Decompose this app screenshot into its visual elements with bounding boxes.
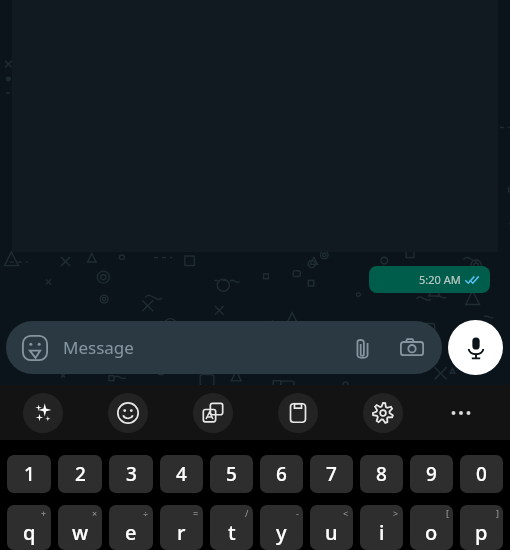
button[interactable]: 6: [260, 455, 303, 493]
staticText: <: [343, 507, 349, 519]
button[interactable]: 2: [58, 455, 102, 493]
staticText: e: [125, 519, 137, 546]
button[interactable]: Stickers: [6, 321, 442, 374]
button[interactable]: 1: [7, 455, 51, 493]
button[interactable]: 7: [310, 455, 353, 493]
button[interactable]: ×: [58, 505, 102, 550]
button[interactable]: 5: [210, 455, 253, 493]
button[interactable]: 3: [109, 455, 153, 493]
staticText: 3: [126, 461, 137, 487]
staticText: t: [228, 519, 236, 546]
button[interactable]: Attach: [344, 330, 380, 366]
button[interactable]: 8: [360, 455, 403, 493]
staticText: 5: [226, 461, 237, 487]
staticText: 6: [276, 461, 287, 487]
button[interactable]: 9: [410, 455, 453, 493]
button[interactable]: More options: [441, 393, 481, 433]
staticText: 5:20 AM: [419, 272, 461, 287]
button[interactable]: Stickers: [18, 331, 52, 365]
button[interactable]: ]: [460, 505, 503, 550]
staticText: ×: [92, 507, 98, 519]
staticText: ]: [496, 507, 499, 519]
staticText: [: [446, 507, 449, 519]
staticText: +: [41, 507, 47, 519]
staticText: 2: [75, 461, 86, 487]
staticText: -: [296, 507, 299, 519]
staticText: q: [23, 519, 36, 546]
staticText: u: [325, 519, 338, 546]
button[interactable]: Voice message: [448, 320, 503, 375]
button[interactable]: 5:20 AM: [369, 266, 490, 293]
button[interactable]: <: [310, 505, 353, 550]
staticText: 9: [426, 461, 437, 487]
staticText: o: [425, 519, 438, 546]
staticText: Message: [63, 336, 344, 359]
button[interactable]: 4: [160, 455, 203, 493]
button[interactable]: +: [7, 505, 51, 550]
staticText: r: [177, 519, 186, 546]
staticText: 7: [326, 461, 337, 487]
staticText: w: [72, 519, 89, 546]
staticText: 4: [176, 461, 187, 487]
button[interactable]: Camera: [394, 330, 430, 366]
button[interactable]: ÷: [109, 505, 153, 550]
staticText: 8: [376, 461, 387, 487]
button[interactable]: >: [360, 505, 403, 550]
button[interactable]: AI assist: [23, 393, 63, 433]
button[interactable]: 0: [460, 455, 503, 493]
staticText: p: [475, 519, 488, 546]
staticText: /: [245, 507, 249, 519]
staticText: 1: [24, 461, 35, 487]
staticText: y: [276, 519, 287, 546]
staticText: 0: [476, 461, 487, 487]
staticText: i: [379, 519, 385, 546]
button[interactable]: Translate: [193, 393, 233, 433]
staticText: =: [193, 507, 199, 519]
button[interactable]: Settings: [363, 393, 403, 433]
button[interactable]: =: [160, 505, 203, 550]
button[interactable]: Emoji: [108, 393, 148, 433]
button[interactable]: -: [260, 505, 303, 550]
staticText: >: [393, 507, 399, 519]
button[interactable]: /: [210, 505, 253, 550]
staticText: ÷: [143, 507, 149, 519]
button[interactable]: [: [410, 505, 453, 550]
button[interactable]: Clipboard: [278, 393, 318, 433]
